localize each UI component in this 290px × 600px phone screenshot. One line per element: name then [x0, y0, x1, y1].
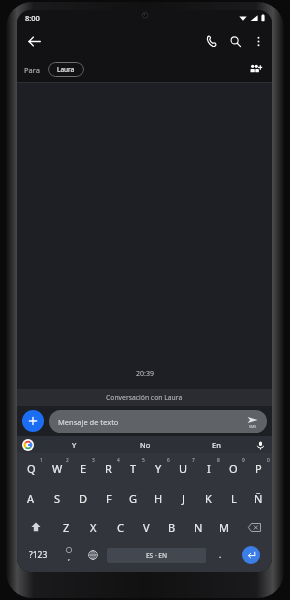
button[interactable]: Back — [22, 29, 46, 53]
staticText: G — [129, 491, 138, 506]
button[interactable]: N — [185, 513, 211, 541]
staticText: Y — [155, 461, 162, 476]
button[interactable]: V — [133, 513, 159, 541]
staticText: F — [106, 491, 112, 506]
button[interactable]: X — [80, 513, 107, 541]
staticText: , — [68, 553, 70, 563]
staticText: . — [219, 549, 222, 561]
staticText: X — [90, 520, 97, 535]
staticText: R — [105, 461, 112, 476]
button[interactable]: F — [96, 483, 121, 513]
button[interactable]: Y — [39, 436, 110, 453]
button[interactable]: R — [96, 453, 121, 483]
button[interactable]: No — [110, 436, 181, 453]
staticText: P — [255, 461, 262, 476]
button[interactable]: Emoji and comma — [57, 541, 81, 569]
staticText: Mensaje de texto — [58, 417, 243, 427]
staticText: Q — [27, 461, 36, 476]
button[interactable]: I — [196, 453, 221, 483]
staticText: S — [54, 491, 61, 506]
staticText: Para — [24, 65, 40, 75]
staticText: T — [130, 461, 137, 476]
staticText: Z — [63, 520, 70, 535]
button[interactable]: Ñ — [246, 483, 271, 513]
staticText: 0 — [267, 457, 270, 464]
staticText: B — [168, 520, 176, 535]
button[interactable]: . — [208, 541, 232, 569]
staticText: ES · EN — [146, 551, 168, 560]
button[interactable]: H — [146, 483, 171, 513]
button[interactable]: Call — [199, 29, 223, 53]
button[interactable]: More options — [247, 30, 269, 52]
button[interactable]: Send SMS — [243, 413, 261, 431]
button[interactable]: ?123 — [20, 541, 57, 569]
button[interactable]: Voice input — [253, 438, 267, 452]
staticText: 1 — [40, 457, 43, 464]
button[interactable]: M — [211, 513, 237, 541]
button[interactable]: S — [44, 483, 70, 513]
button[interactable]: T — [121, 453, 146, 483]
staticText: ?123 — [29, 549, 48, 561]
staticText: 5 — [142, 457, 145, 464]
staticText: Y — [72, 440, 77, 450]
button[interactable]: B — [159, 513, 185, 541]
button[interactable]: L — [221, 483, 246, 513]
button[interactable]: Add attachment — [22, 410, 44, 432]
button[interactable]: U — [171, 453, 196, 483]
staticText: H — [154, 491, 163, 506]
staticText: 4 — [117, 457, 120, 464]
button[interactable]: Add people — [246, 59, 266, 79]
button[interactable]: W — [44, 453, 70, 483]
button[interactable]: J — [171, 483, 196, 513]
staticText: No — [140, 440, 151, 450]
button[interactable]: En — [181, 436, 252, 453]
button[interactable]: Y — [146, 453, 171, 483]
staticText: 7 — [192, 457, 195, 464]
button[interactable]: K — [196, 483, 221, 513]
staticText: V — [143, 520, 150, 535]
button[interactable]: P — [246, 453, 271, 483]
staticText: A — [27, 491, 35, 506]
staticText: W — [52, 461, 63, 476]
button[interactable]: O — [221, 453, 246, 483]
staticText: N — [194, 520, 203, 535]
staticText: K — [205, 491, 212, 506]
button[interactable]: D — [70, 483, 96, 513]
staticText: En — [212, 440, 221, 450]
button[interactable]: C — [107, 513, 133, 541]
staticText: 20:39 — [136, 369, 154, 379]
staticText: Conversación con Laura — [106, 393, 183, 402]
staticText: Laura — [57, 65, 75, 74]
staticText: Ñ — [254, 491, 263, 506]
button[interactable]: A — [18, 483, 44, 513]
button[interactable]: Z — [53, 513, 80, 541]
staticText: O — [229, 461, 238, 476]
button[interactable]: Search — [223, 29, 247, 53]
button[interactable]: Change language — [81, 541, 105, 569]
button[interactable]: G — [121, 483, 146, 513]
staticText: 2 — [66, 457, 69, 464]
button[interactable]: Google — [22, 439, 34, 451]
staticText: L — [231, 491, 237, 506]
button[interactable]: Q — [18, 453, 44, 483]
button[interactable]: Laura — [48, 62, 84, 77]
staticText: 8 — [217, 457, 220, 464]
staticText: 9 — [242, 457, 245, 464]
button[interactable]: ES · EN — [107, 548, 206, 563]
staticText: 8:00 — [25, 13, 40, 23]
staticText: C — [117, 520, 124, 535]
staticText: M — [219, 520, 229, 535]
staticText: I — [207, 461, 211, 476]
staticText: 3 — [92, 457, 95, 464]
staticText: 6 — [167, 457, 170, 464]
button[interactable]: Shift — [18, 513, 53, 541]
staticText: U — [179, 461, 188, 476]
button[interactable]: Backspace — [237, 513, 271, 541]
staticText: J — [182, 491, 186, 506]
button[interactable]: E — [70, 453, 96, 483]
staticText: SMS — [249, 424, 257, 429]
staticText: D — [79, 491, 88, 506]
button[interactable]: Enter — [232, 541, 269, 569]
staticText: E — [80, 461, 87, 476]
button[interactable]: Mensaje de texto — [49, 410, 267, 433]
